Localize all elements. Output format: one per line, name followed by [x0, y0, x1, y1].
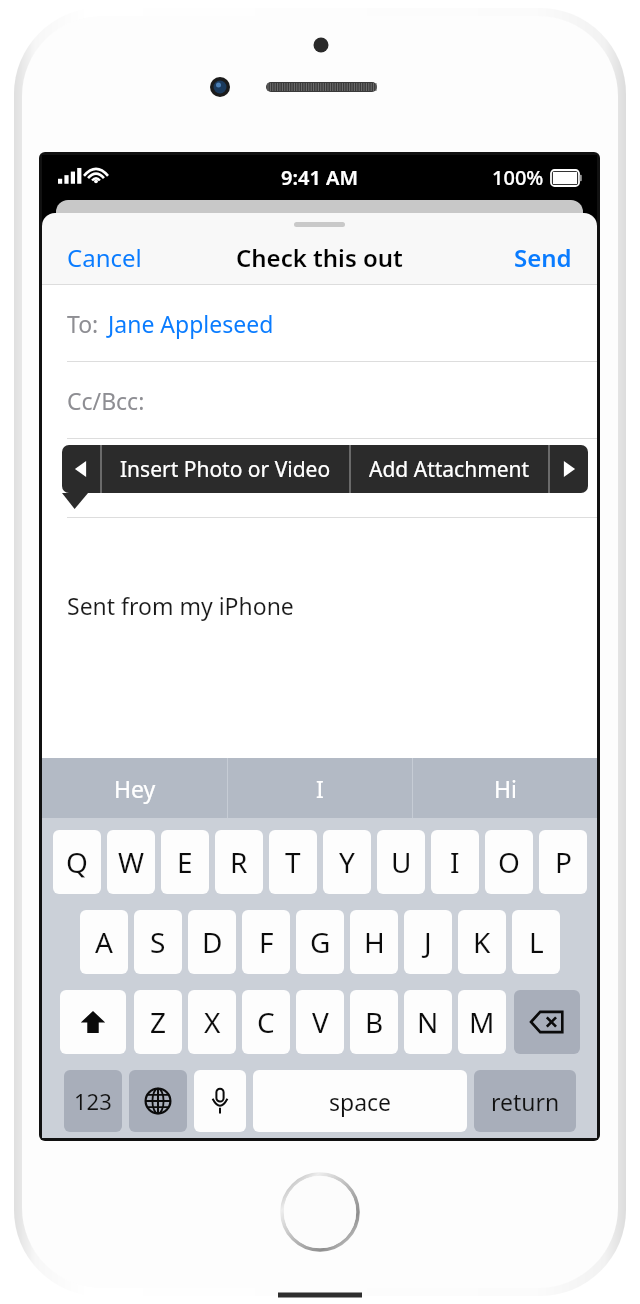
button[interactable]: Hi [413, 758, 597, 818]
button[interactable]: S [134, 910, 182, 974]
button[interactable]: F [242, 910, 290, 974]
staticText: S [150, 923, 166, 961]
staticText: U [391, 843, 412, 881]
staticText: Z [150, 1003, 167, 1041]
button[interactable]: O [485, 830, 533, 894]
button[interactable]: To: [42, 285, 597, 361]
button[interactable]: Q [53, 830, 101, 894]
button[interactable]: X [188, 990, 236, 1054]
staticText: G [310, 923, 331, 961]
button[interactable]: Cancel [42, 231, 167, 284]
button[interactable]: K [458, 910, 506, 974]
button[interactable]: V [296, 990, 344, 1054]
button[interactable]: C [242, 990, 290, 1054]
staticText: Sent from my iPhone [67, 590, 294, 621]
staticText: Add Attachment [369, 455, 530, 484]
button[interactable]: I [228, 758, 412, 818]
staticText: D [202, 923, 223, 961]
button[interactable]: J [404, 910, 452, 974]
button[interactable]: Delete [514, 990, 580, 1054]
staticText: space [329, 1086, 392, 1117]
staticText: Check this out [236, 241, 403, 274]
staticText: P [555, 843, 572, 881]
button[interactable]: D [188, 910, 236, 974]
staticText: C [257, 1003, 275, 1041]
button[interactable]: H [350, 910, 398, 974]
button[interactable]: P [539, 830, 587, 894]
button[interactable]: U [377, 830, 425, 894]
staticText: V [312, 1003, 329, 1041]
button[interactable]: G [296, 910, 344, 974]
button[interactable]: N [404, 990, 452, 1054]
button[interactable]: Change keyboard [129, 1070, 187, 1132]
button[interactable]: return [474, 1070, 576, 1132]
staticText: B [365, 1003, 384, 1041]
button[interactable]: Shift [60, 990, 126, 1054]
button[interactable]: space [253, 1070, 467, 1132]
button[interactable]: E [161, 830, 209, 894]
button[interactable]: Previous [62, 445, 100, 493]
staticText: Y [339, 843, 355, 881]
button[interactable]: Send [489, 231, 597, 284]
button[interactable]: Next [550, 445, 588, 493]
staticText: E [177, 843, 193, 881]
staticText: return [491, 1086, 560, 1117]
staticText: Jane Appleseed [108, 308, 274, 339]
button[interactable]: W [107, 830, 155, 894]
staticText: X [204, 1003, 221, 1041]
staticText: O [498, 843, 520, 881]
staticText: W [118, 843, 145, 881]
button[interactable]: Hey [42, 758, 227, 818]
button[interactable]: I [431, 830, 479, 894]
staticText: 123 [74, 1086, 112, 1116]
staticText: H [364, 923, 385, 961]
button[interactable]: A [80, 910, 128, 974]
staticText: I [450, 843, 460, 881]
staticText: Q [66, 843, 88, 881]
staticText: Cc/Bcc: [67, 385, 145, 416]
staticText: Hi [494, 773, 517, 804]
staticText: R [230, 843, 248, 881]
button[interactable]: Add Attachment [351, 445, 548, 493]
button[interactable]: T [269, 830, 317, 894]
staticText: Insert Photo or Video [120, 455, 331, 484]
button[interactable]: Insert Photo or Video [102, 445, 349, 493]
staticText: Hey [114, 773, 156, 804]
button[interactable]: Dictation [194, 1070, 246, 1132]
staticText: M [469, 1003, 495, 1041]
button[interactable]: B [350, 990, 398, 1054]
button[interactable]: Sent from my iPhone [42, 518, 597, 758]
staticText: I [316, 773, 324, 804]
staticText: Cancel [67, 241, 142, 274]
button[interactable]: Y [323, 830, 371, 894]
staticText: N [417, 1003, 439, 1041]
button[interactable]: L [512, 910, 560, 974]
button[interactable]: Z [134, 990, 182, 1054]
staticText: Send [514, 241, 572, 274]
button[interactable]: R [215, 830, 263, 894]
button[interactable]: M [458, 990, 506, 1054]
staticText: A [95, 923, 113, 961]
staticText: 9:41 AM [281, 164, 359, 191]
staticText: T [285, 843, 301, 881]
button[interactable]: Cc/Bcc: [42, 362, 597, 438]
button[interactable]: 123 [64, 1070, 122, 1132]
staticText: K [473, 923, 491, 961]
staticText: 100% [492, 164, 544, 191]
staticText: F [259, 923, 274, 961]
staticText: To: [67, 308, 99, 339]
staticText: L [529, 923, 544, 961]
staticText: J [424, 923, 432, 961]
